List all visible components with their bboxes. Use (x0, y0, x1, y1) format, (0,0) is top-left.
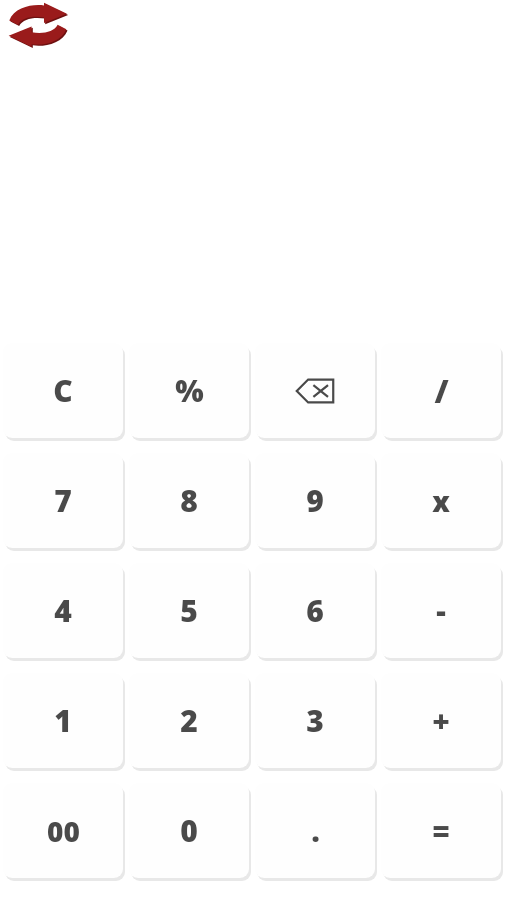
button[interactable]: 2 (129, 673, 249, 768)
staticText: = (432, 810, 450, 851)
staticText: C (53, 370, 73, 411)
button[interactable]: 5 (129, 563, 249, 658)
staticText: + (432, 700, 450, 741)
staticText: 1 (54, 700, 72, 741)
staticText: . (311, 810, 320, 851)
button[interactable]: 4 (3, 563, 123, 658)
button[interactable]: Backspace (255, 343, 375, 438)
staticText: 7 (54, 480, 72, 521)
button[interactable]: Divide (381, 343, 501, 438)
staticText: x (432, 482, 450, 520)
staticText: 3 (306, 700, 324, 741)
button[interactable]: Decimal point (255, 783, 375, 878)
staticText: / (434, 369, 449, 413)
button[interactable]: Clear (3, 343, 123, 438)
staticText: 4 (54, 590, 72, 631)
button[interactable]: Minus (381, 563, 501, 658)
button[interactable]: 7 (3, 453, 123, 548)
button[interactable]: 1 (3, 673, 123, 768)
button[interactable]: Multiply (381, 453, 501, 548)
button[interactable]: 8 (129, 453, 249, 548)
button[interactable]: 0 (129, 783, 249, 878)
button[interactable]: 3 (255, 673, 375, 768)
button[interactable]: 9 (255, 453, 375, 548)
staticText: 6 (306, 590, 324, 631)
staticText: 2 (180, 700, 198, 741)
button[interactable]: 6 (255, 563, 375, 658)
staticText: % (175, 370, 204, 411)
button[interactable]: Plus (381, 673, 501, 768)
staticText: 0 (180, 810, 198, 851)
staticText: 5 (180, 590, 198, 631)
button[interactable]: Percent (129, 343, 249, 438)
staticText: - (436, 590, 446, 631)
staticText: 00 (47, 812, 80, 850)
button[interactable]: Swap (6, 2, 72, 50)
button[interactable]: 00 (3, 783, 123, 878)
button[interactable]: Equals (381, 783, 501, 878)
staticText: 8 (180, 480, 198, 521)
staticText: 9 (306, 480, 324, 521)
